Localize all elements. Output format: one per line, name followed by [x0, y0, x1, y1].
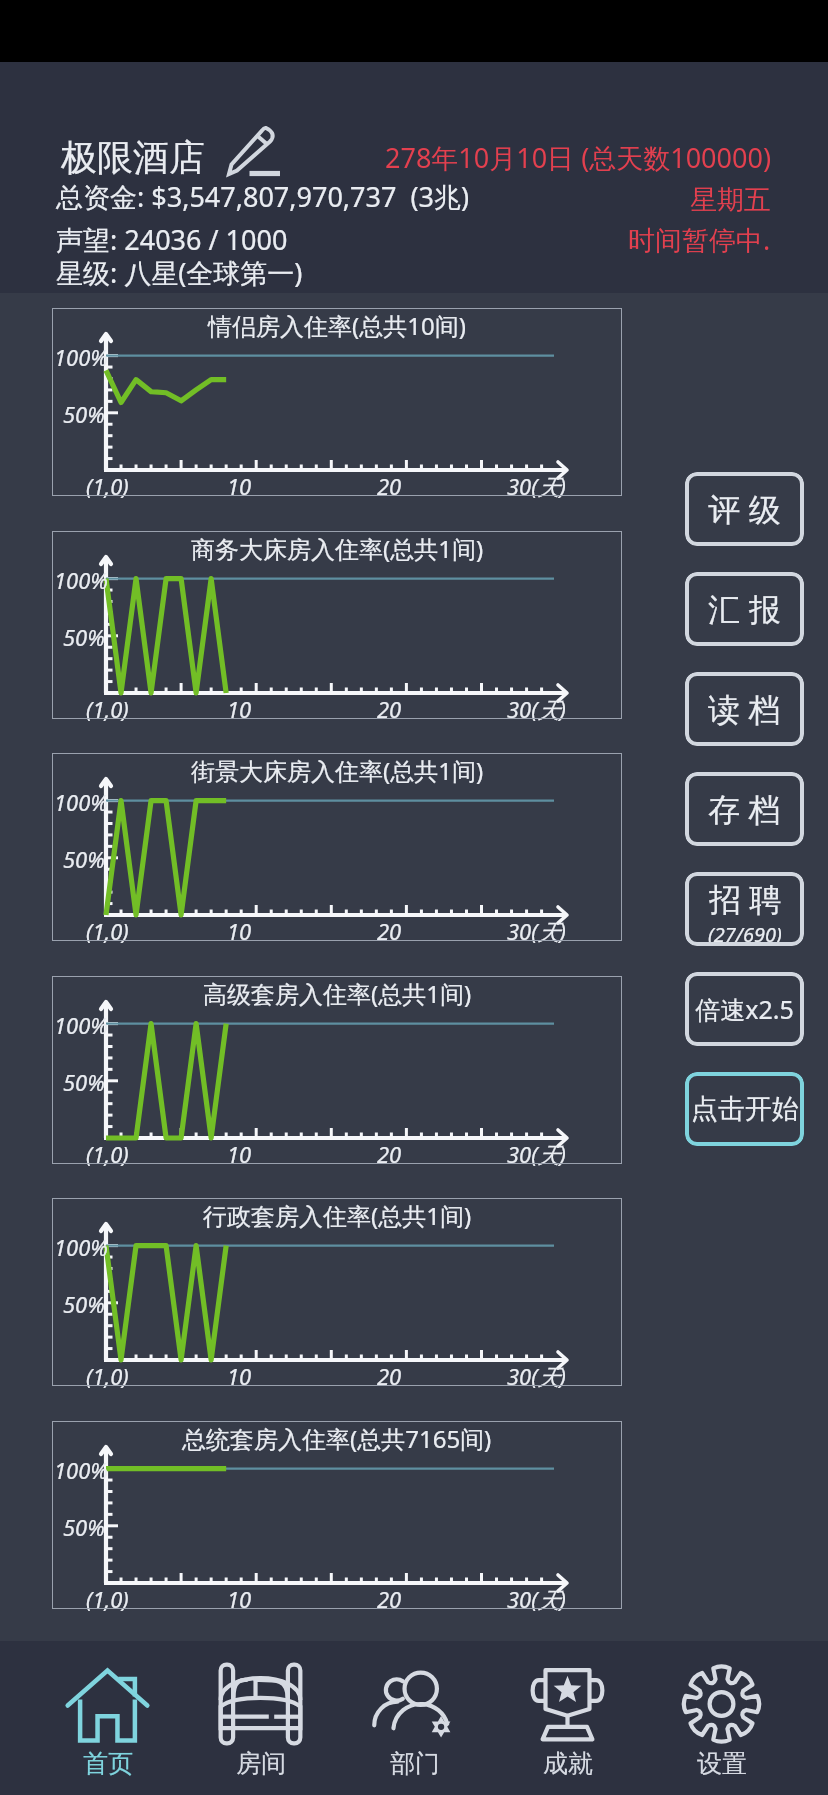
staticText: 极限酒店	[61, 135, 205, 180]
staticText: 50%	[63, 1067, 105, 1097]
button[interactable]: 评 级	[685, 472, 804, 546]
staticText: 20	[377, 1584, 402, 1614]
staticText: (1,0)	[86, 1584, 129, 1614]
staticText: 声望: 24036 / 1000	[56, 221, 288, 258]
staticText: 首页	[83, 1748, 133, 1779]
staticText: 30(天)	[507, 1584, 567, 1614]
button[interactable]: 房间	[214, 1641, 307, 1795]
button[interactable]: 部门	[368, 1641, 461, 1795]
staticText: 100%	[54, 1232, 108, 1262]
staticText: 100%	[54, 1455, 108, 1485]
staticText: 50%	[63, 399, 105, 429]
button[interactable]: 汇 报	[685, 572, 804, 646]
staticText: 部门	[390, 1748, 440, 1779]
staticText: 50%	[63, 844, 105, 874]
staticText: 30(天)	[507, 916, 567, 946]
button[interactable]: 设置	[675, 1641, 768, 1795]
staticText: 房间	[236, 1748, 286, 1779]
button[interactable]: 编辑酒店名称	[227, 126, 277, 176]
staticText: 情侣房入住率(总共10间)	[208, 309, 466, 342]
staticText: 20	[377, 471, 402, 501]
staticText: 成就	[543, 1748, 593, 1779]
button[interactable]: 倍速x2.5	[685, 972, 804, 1046]
staticText: 评 级	[708, 487, 781, 531]
staticText: 100%	[54, 342, 108, 372]
staticText: 30(天)	[507, 694, 567, 724]
staticText: 100%	[54, 1010, 108, 1040]
staticText: 读 档	[708, 687, 781, 731]
staticText: 总资金: $3,547,807,970,737 (3兆)	[56, 178, 470, 215]
staticText: 20	[377, 694, 402, 724]
button[interactable]: 存 档	[685, 772, 804, 846]
staticText: 50%	[63, 1512, 105, 1542]
staticText: 街景大床房入住率(总共1间)	[191, 754, 484, 787]
button[interactable]: 招 聘	[685, 872, 804, 946]
staticText: 存 档	[708, 787, 781, 831]
staticText: 高级套房入住率(总共1间)	[203, 977, 472, 1010]
staticText: 20	[377, 916, 402, 946]
staticText: 10	[227, 1361, 252, 1391]
staticText: 行政套房入住率(总共1间)	[203, 1199, 472, 1232]
staticText: 倍速x2.5	[695, 992, 794, 1026]
staticText: (1,0)	[86, 1139, 129, 1169]
staticText: (27/690)	[708, 921, 782, 946]
button[interactable]: 成就	[521, 1641, 614, 1795]
staticText: 总统套房入住率(总共7165间)	[182, 1422, 492, 1455]
staticText: 星级: 八星(全球第一)	[56, 254, 303, 291]
staticText: 30(天)	[507, 471, 567, 501]
staticText: 100%	[54, 787, 108, 817]
staticText: 50%	[63, 1289, 105, 1319]
staticText: 点击开始	[691, 1092, 799, 1126]
staticText: (1,0)	[86, 1361, 129, 1391]
staticText: 10	[227, 694, 252, 724]
staticText: 20	[377, 1139, 402, 1169]
staticText: 10	[227, 1139, 252, 1169]
staticText: (1,0)	[86, 694, 129, 724]
staticText: 汇 报	[708, 587, 781, 631]
staticText: 278年10月10日 (总天数100000)	[385, 139, 771, 176]
button[interactable]: 读 档	[685, 672, 804, 746]
button[interactable]: 点击开始	[685, 1072, 804, 1146]
staticText: 星期五	[690, 183, 771, 217]
staticText: 10	[227, 916, 252, 946]
button[interactable]: 首页	[61, 1641, 154, 1795]
staticText: 招 聘	[709, 877, 782, 921]
staticText: 时间暂停中.	[628, 221, 771, 258]
staticText: 30(天)	[507, 1361, 567, 1391]
staticText: 100%	[54, 565, 108, 595]
staticText: 20	[377, 1361, 402, 1391]
staticText: (1,0)	[86, 471, 129, 501]
staticText: 10	[227, 471, 252, 501]
staticText: (1,0)	[86, 916, 129, 946]
staticText: 设置	[697, 1748, 747, 1779]
staticText: 商务大床房入住率(总共1间)	[191, 532, 484, 565]
staticText: 50%	[63, 622, 105, 652]
staticText: 10	[227, 1584, 252, 1614]
staticText: 30(天)	[507, 1139, 567, 1169]
